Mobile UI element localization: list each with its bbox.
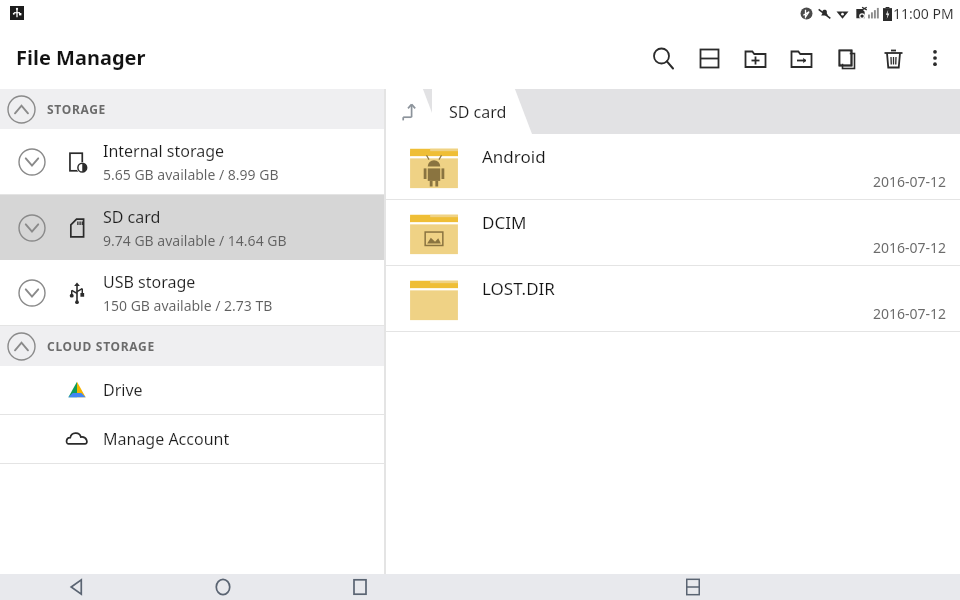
button[interactable]: USB storage xyxy=(0,260,384,325)
staticText: 150 GB available / 2.73 TB xyxy=(103,296,273,315)
button[interactable]: Drive xyxy=(0,366,384,414)
staticText: 5.65 GB available / 8.99 GB xyxy=(103,165,279,184)
button[interactable]: Recents xyxy=(294,574,425,600)
staticText: SD card xyxy=(103,206,161,228)
staticText: Drive xyxy=(103,379,143,401)
button[interactable]: Move to folder xyxy=(778,34,824,82)
staticText: 11:00 PM xyxy=(893,4,954,23)
button[interactable]: Copy xyxy=(824,34,870,82)
staticText: STORAGE xyxy=(47,101,107,117)
staticText: LOST.DIR xyxy=(482,277,555,300)
button[interactable]: Android xyxy=(386,134,960,199)
staticText: File Manager xyxy=(16,44,146,71)
button[interactable]: CLOUD STORAGE xyxy=(0,326,384,366)
button[interactable]: Split screen xyxy=(686,34,732,82)
staticText: CLOUD STORAGE xyxy=(47,338,155,354)
button[interactable]: SD card xyxy=(432,89,532,134)
button[interactable]: Home xyxy=(152,574,294,600)
button[interactable]: Manage Account xyxy=(0,415,384,463)
button[interactable]: Delete xyxy=(870,34,916,82)
button[interactable]: New folder xyxy=(732,34,778,82)
staticText: 2016-07-12 xyxy=(872,238,946,257)
button[interactable]: Up xyxy=(386,89,440,134)
button[interactable]: LOST.DIR xyxy=(386,266,960,331)
button[interactable]: Search xyxy=(640,34,686,82)
button[interactable]: STORAGE xyxy=(0,89,384,129)
staticText: USB storage xyxy=(103,271,196,293)
button[interactable]: DCIM xyxy=(386,200,960,265)
staticText: SD card xyxy=(449,101,507,123)
staticText: Manage Account xyxy=(103,428,230,450)
staticText: 2016-07-12 xyxy=(872,172,946,191)
staticText: Android xyxy=(482,145,546,168)
button[interactable]: Back xyxy=(0,574,152,600)
button[interactable]: More options xyxy=(916,34,954,82)
button[interactable]: Internal storage xyxy=(0,129,384,194)
staticText: DCIM xyxy=(482,211,527,234)
staticText: 9.74 GB available / 14.64 GB xyxy=(103,231,287,250)
button[interactable]: SD card xyxy=(0,195,384,260)
button[interactable]: Split screen xyxy=(425,574,960,600)
staticText: Internal storage xyxy=(103,140,225,162)
staticText: 2016-07-12 xyxy=(872,304,946,323)
